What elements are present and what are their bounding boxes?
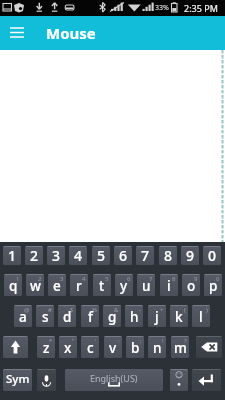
staticText: : xyxy=(118,337,120,345)
staticText: e xyxy=(53,277,61,295)
staticText: 5 xyxy=(105,275,109,283)
button[interactable]: : xyxy=(104,336,122,358)
staticText: 33% xyxy=(155,3,169,13)
button[interactable]: ' xyxy=(81,336,99,358)
staticText: Mouse xyxy=(46,23,96,43)
button[interactable]: + xyxy=(148,305,166,327)
staticText: 3 xyxy=(60,275,64,283)
button[interactable]: ( xyxy=(170,305,188,327)
staticText: 9 xyxy=(186,246,195,265)
staticText: # xyxy=(48,306,52,314)
button[interactable] xyxy=(3,336,28,358)
staticText: ? xyxy=(184,337,187,345)
button[interactable]: 6 xyxy=(114,246,132,265)
button[interactable]: 0 xyxy=(204,274,222,296)
button[interactable]: 2 xyxy=(26,274,44,296)
staticText: i xyxy=(167,277,171,295)
staticText: h xyxy=(130,308,139,326)
button[interactable]: % xyxy=(81,305,99,327)
staticText: z xyxy=(43,339,50,357)
button[interactable]: & xyxy=(103,305,121,327)
staticText: 2:35 PM xyxy=(184,2,218,14)
staticText: 4 xyxy=(74,246,83,265)
staticText: k xyxy=(175,308,183,326)
button[interactable]: # xyxy=(36,305,54,327)
staticText: 7 xyxy=(141,246,150,265)
staticText: 2 xyxy=(38,275,42,283)
staticText: c xyxy=(87,339,94,357)
button[interactable]: $ xyxy=(58,305,76,327)
staticText: $ xyxy=(70,306,74,314)
button[interactable]: 1 xyxy=(3,246,21,265)
staticText: g xyxy=(108,308,117,326)
staticText: 4 xyxy=(82,275,86,283)
button[interactable]: 2 xyxy=(25,246,43,265)
button[interactable]: ; xyxy=(126,336,144,358)
staticText: f xyxy=(88,308,93,326)
button[interactable]: ) xyxy=(192,305,210,327)
staticText: w xyxy=(30,277,41,295)
button[interactable]: * xyxy=(37,336,55,358)
staticText: ' xyxy=(95,337,97,345)
staticText: m xyxy=(174,339,187,357)
staticText: 8 xyxy=(164,246,173,265)
button[interactable]: Space xyxy=(65,369,163,391)
staticText: p xyxy=(209,277,218,295)
button[interactable]: ? xyxy=(171,336,189,358)
staticText: ( xyxy=(184,306,186,314)
staticText: ; xyxy=(140,337,142,345)
staticText: - xyxy=(139,306,141,314)
button[interactable]: " xyxy=(59,336,77,358)
button[interactable]: ! xyxy=(148,336,166,358)
button[interactable]: 5 xyxy=(92,246,110,265)
button[interactable]: 0 xyxy=(203,246,221,265)
staticText: + xyxy=(160,306,164,314)
button[interactable] xyxy=(196,336,222,358)
button[interactable]: 9 xyxy=(182,274,200,296)
button[interactable]: Menu xyxy=(0,16,34,50)
staticText: & xyxy=(114,306,119,314)
button[interactable]: 6 xyxy=(115,274,133,296)
staticText: x xyxy=(64,339,72,357)
button[interactable]: 5 xyxy=(93,274,111,296)
staticText: r xyxy=(76,277,82,295)
button[interactable]: 3 xyxy=(47,246,65,265)
button[interactable]: @ xyxy=(14,305,32,327)
button[interactable]: 8 xyxy=(160,274,178,296)
staticText: 2 xyxy=(30,246,39,265)
staticText: 6 xyxy=(127,275,131,283)
staticText: 7 xyxy=(149,275,153,283)
staticText: a xyxy=(19,308,27,326)
staticText: l xyxy=(199,308,203,326)
staticText: 0 xyxy=(216,275,220,283)
staticText: o xyxy=(187,277,196,295)
staticText: d xyxy=(63,308,72,326)
button[interactable]: 3 xyxy=(48,274,66,296)
staticText: ) xyxy=(206,306,208,314)
button[interactable]: 1 xyxy=(4,274,22,296)
button[interactable]: 7 xyxy=(136,246,154,265)
staticText: 0 xyxy=(208,246,217,265)
staticText: q xyxy=(9,277,18,295)
button[interactable] xyxy=(170,369,188,391)
button[interactable]: 4 xyxy=(69,246,87,265)
staticText: * xyxy=(49,337,53,345)
staticText: b xyxy=(131,339,140,357)
button[interactable]: 4 xyxy=(70,274,88,296)
button[interactable]: Sym xyxy=(3,369,32,391)
button[interactable] xyxy=(192,369,221,391)
button[interactable]: - xyxy=(125,305,143,327)
staticText: 1 xyxy=(16,275,20,283)
staticText: " xyxy=(72,337,75,345)
button[interactable]: 9 xyxy=(181,246,199,265)
staticText: 9 xyxy=(194,275,198,283)
button[interactable]: 7 xyxy=(137,274,155,296)
staticText: n xyxy=(153,339,162,357)
button[interactable]: 8 xyxy=(159,246,177,265)
staticText: ! xyxy=(162,337,164,345)
button[interactable] xyxy=(37,369,56,391)
staticText: Sym xyxy=(6,371,30,387)
staticText: y xyxy=(120,277,128,295)
staticText: 3 xyxy=(52,246,61,265)
staticText: t xyxy=(99,277,105,295)
